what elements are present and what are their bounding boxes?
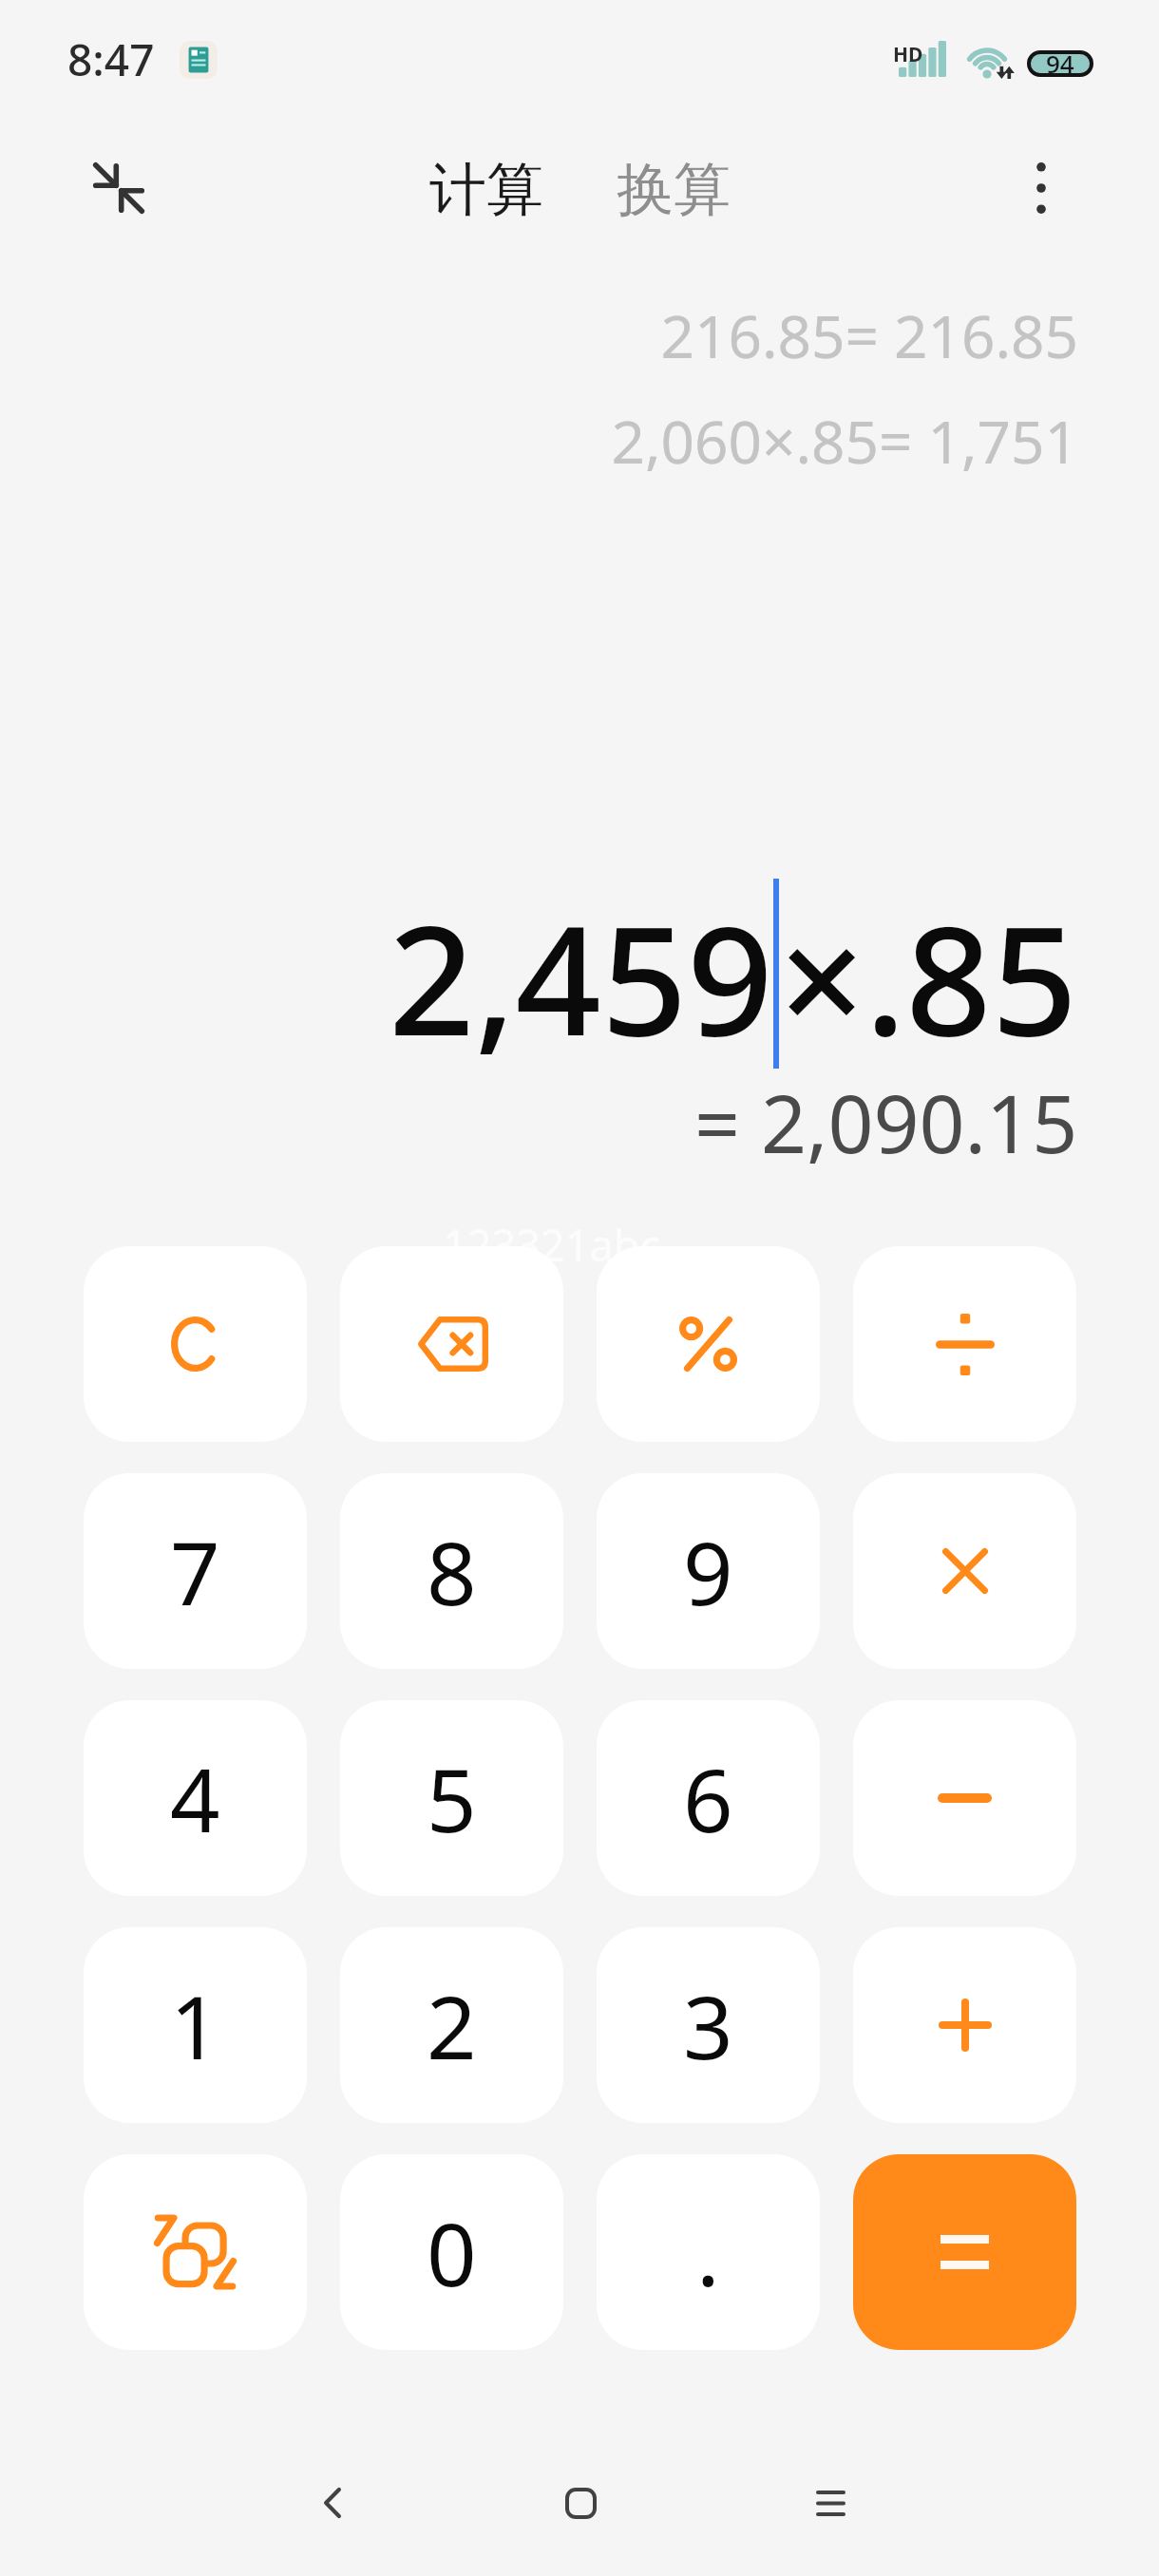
button[interactable]: 3 [597, 1927, 820, 2123]
button[interactable]: 7 [84, 1473, 307, 1669]
button[interactable]: 计算 [416, 142, 557, 237]
button[interactable]: 5 [340, 1700, 563, 1896]
staticText: 9 [683, 1512, 733, 1631]
button[interactable]: Plus [853, 1927, 1076, 2123]
button[interactable]: Collapse [66, 136, 171, 240]
button[interactable]: Backspace [340, 1246, 563, 1442]
button[interactable]: Clear [84, 1246, 307, 1442]
other: Divide [936, 1314, 995, 1375]
staticText: . [696, 2193, 720, 2312]
staticText: 计算 [429, 154, 543, 226]
button[interactable]: 9 [597, 1473, 820, 1669]
staticText: = 2,090.15 [694, 1068, 1078, 1176]
staticText: 8:47 [67, 29, 155, 89]
staticText: ×.85 [779, 875, 1078, 1079]
button[interactable]: Home [528, 2451, 633, 2555]
staticText: 5 [427, 1739, 477, 1858]
staticText: 94 [1046, 47, 1074, 80]
button[interactable]: Percent [597, 1246, 820, 1442]
button[interactable]: Minus [853, 1700, 1076, 1896]
other: Scientific keypad [154, 2214, 237, 2290]
staticText: 4 [170, 1739, 220, 1858]
button[interactable]: Equals [853, 2154, 1076, 2350]
other: Clear [171, 1316, 219, 1372]
staticText: 3 [683, 1966, 733, 2085]
staticText: 6 [683, 1739, 733, 1858]
button[interactable]: 2 [340, 1927, 563, 2123]
button[interactable]: Back [280, 2451, 385, 2555]
other: Minus [938, 1793, 992, 1803]
button[interactable]: 6 [597, 1700, 820, 1896]
other: Percent [679, 1316, 737, 1372]
staticText: 换算 [617, 154, 731, 226]
button[interactable]: 0 [340, 2154, 563, 2350]
button[interactable]: Divide [853, 1246, 1076, 1442]
button[interactable]: 8 [340, 1473, 563, 1669]
staticText: 8 [427, 1512, 477, 1631]
button[interactable]: More options [994, 141, 1089, 236]
staticText: 2,459 [389, 875, 773, 1079]
staticText: HD [893, 41, 923, 68]
button[interactable]: 4 [84, 1700, 307, 1896]
staticText: 2,060×.85= 1,751 [611, 401, 1078, 481]
other: Backspace [416, 1316, 488, 1372]
staticText: 216.85= 216.85 [660, 295, 1078, 375]
button[interactable]: Scientific keypad [84, 2154, 307, 2350]
button[interactable]: Recent apps [778, 2451, 883, 2555]
staticText: 123321abc [443, 1216, 660, 1274]
other: Plus [939, 1998, 992, 2052]
staticText: 1 [170, 1966, 220, 2085]
staticText: 0 [427, 2193, 477, 2312]
button[interactable]: . [597, 2154, 820, 2350]
staticText: 7 [170, 1512, 220, 1631]
other: Multiply [942, 1548, 988, 1594]
button[interactable]: 换算 [603, 142, 744, 237]
button[interactable]: Multiply [853, 1473, 1076, 1669]
staticText: 2 [427, 1966, 477, 2085]
button[interactable]: 1 [84, 1927, 307, 2123]
